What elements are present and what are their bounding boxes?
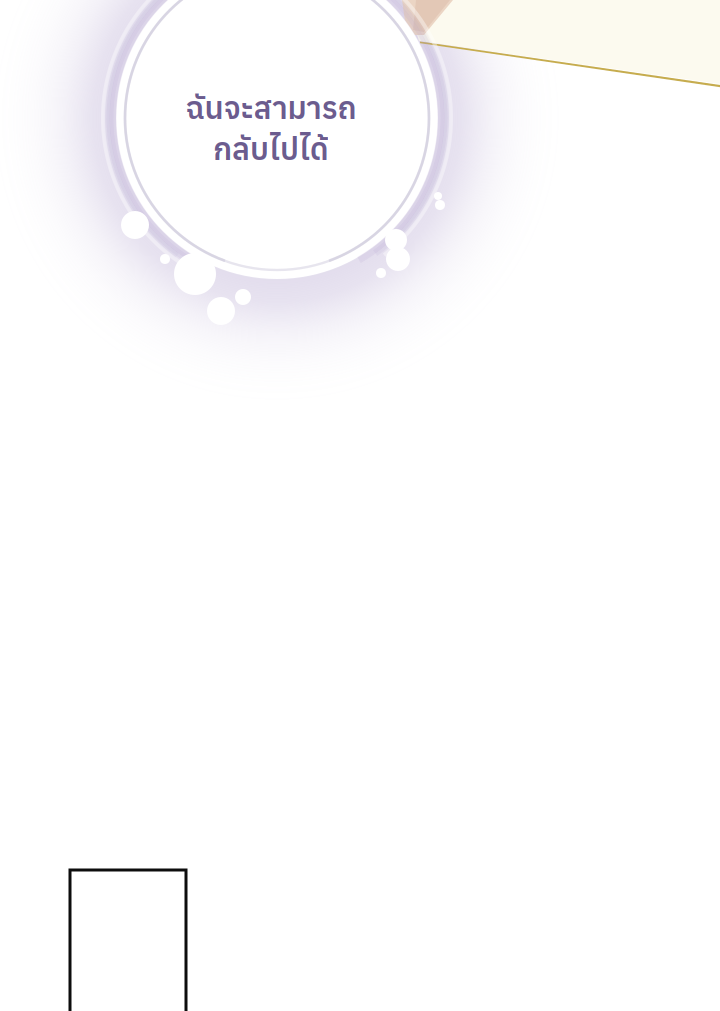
staticText: กลับไปได้ bbox=[213, 128, 329, 168]
staticText: ฉันจะสามารถ bbox=[185, 88, 356, 127]
